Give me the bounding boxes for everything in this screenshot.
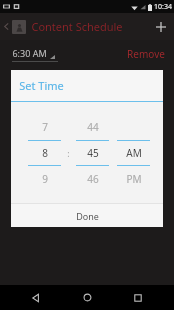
- button[interactable]: Navigate up: [0, 13, 12, 40]
- staticText: AM: [126, 146, 142, 160]
- staticText: 8: [42, 146, 48, 160]
- staticText: PM: [126, 172, 142, 186]
- button[interactable]: Back: [21, 285, 51, 310]
- staticText: 7: [42, 120, 48, 134]
- button[interactable]: Minute: [76, 114, 109, 192]
- staticText: Set Time: [19, 78, 64, 93]
- button[interactable]: Recent apps: [123, 285, 153, 310]
- staticText: 10:34: [154, 2, 172, 12]
- button[interactable]: Remove: [127, 47, 165, 61]
- staticText: Remove: [127, 47, 165, 61]
- button[interactable]: Home: [72, 285, 102, 310]
- button[interactable]: Done: [11, 204, 163, 227]
- staticText: Done: [76, 210, 99, 222]
- staticText: 45: [87, 146, 99, 160]
- button[interactable]: Add: [147, 13, 174, 40]
- staticText: :: [67, 147, 70, 159]
- staticText: 44: [87, 120, 99, 134]
- staticText: 9: [42, 172, 48, 186]
- staticText: 46: [87, 172, 99, 186]
- button[interactable]: 6:30 AM: [12, 47, 58, 62]
- button[interactable]: Hour: [28, 114, 61, 192]
- staticText: 6:30 AM: [12, 47, 47, 59]
- button[interactable]: AM or PM: [117, 114, 150, 192]
- staticText: Content Schedule: [31, 19, 123, 34]
